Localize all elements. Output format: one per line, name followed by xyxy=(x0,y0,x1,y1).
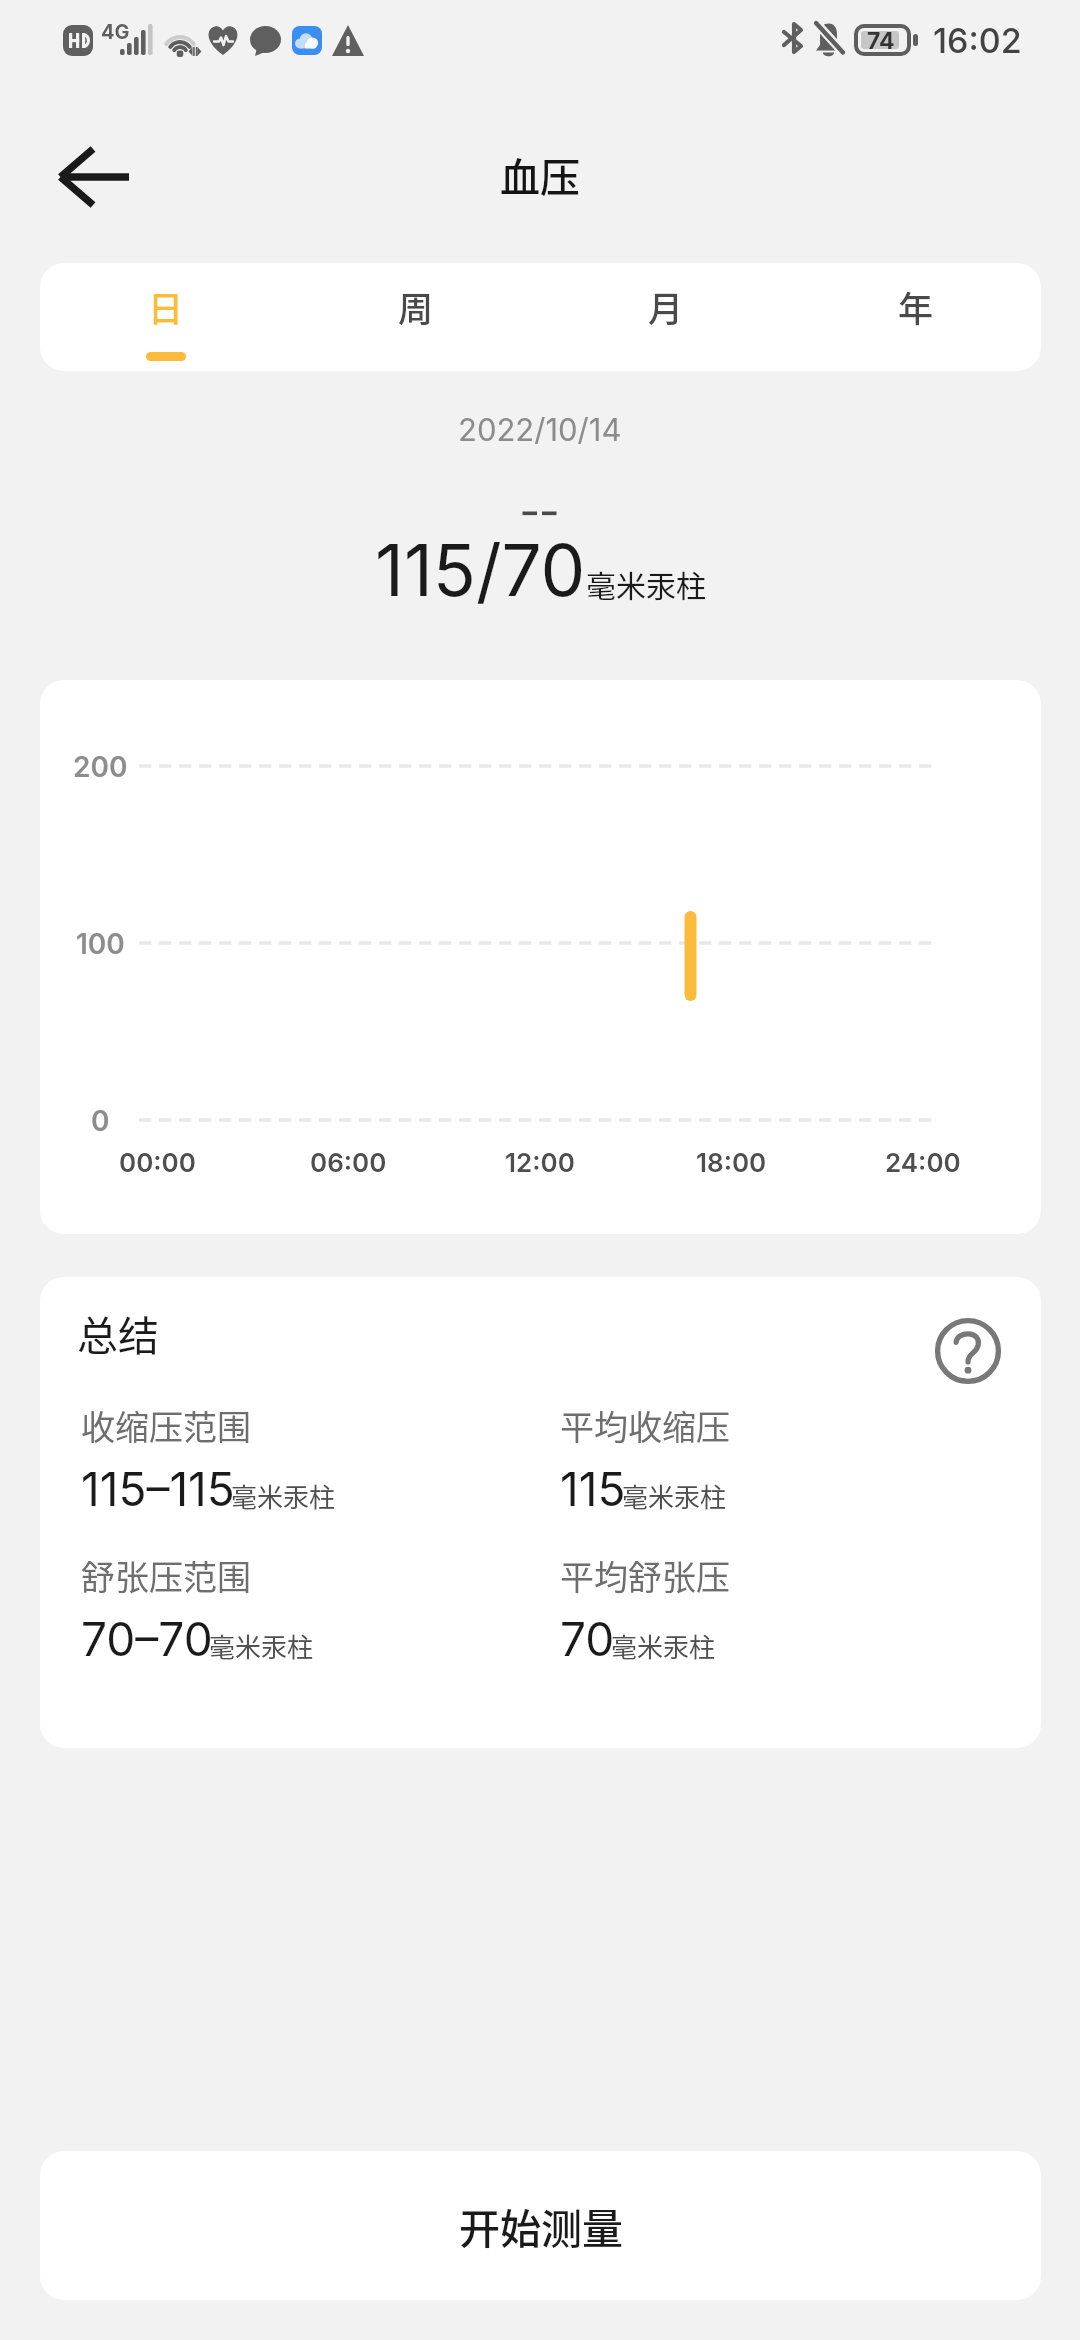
staticText: 平均舒张压 xyxy=(560,1551,730,1600)
staticText: 0 xyxy=(91,1104,110,1138)
staticText: 年 xyxy=(898,281,934,332)
staticText: 100 xyxy=(76,927,125,961)
staticText: 06:00 xyxy=(310,1147,387,1178)
staticText: 毫米汞柱 xyxy=(622,1477,727,1515)
button[interactable]: Help xyxy=(916,1299,1020,1403)
staticText: 12:00 xyxy=(505,1147,575,1178)
staticText: 70 xyxy=(560,1611,615,1667)
staticText: 平均收缩压 xyxy=(560,1401,730,1450)
staticText: 毫米汞柱 xyxy=(586,562,706,605)
staticText: 74 xyxy=(867,27,895,55)
staticText: 月 xyxy=(648,281,684,332)
staticText: 收缩压范围 xyxy=(81,1401,251,1450)
staticText: 00:00 xyxy=(119,1147,196,1178)
staticText: 70–70 xyxy=(81,1611,213,1667)
staticText: 毫米汞柱 xyxy=(209,1627,314,1665)
button[interactable]: 日 xyxy=(40,263,291,371)
staticText: 毫米汞柱 xyxy=(611,1627,716,1665)
button[interactable]: 年 xyxy=(791,263,1041,371)
staticText: 2022/10/14 xyxy=(458,411,622,449)
button[interactable]: 月 xyxy=(541,263,791,371)
staticText: 16:02 xyxy=(933,20,1022,61)
staticText: 18:00 xyxy=(696,1147,767,1178)
staticText: 115 xyxy=(560,1461,626,1517)
staticText: 血压 xyxy=(500,146,580,204)
staticText: 4G xyxy=(101,20,130,44)
staticText: 周 xyxy=(398,281,434,332)
staticText: 舒张压范围 xyxy=(81,1551,251,1600)
staticText: 200 xyxy=(73,750,128,784)
staticText: 115–115 xyxy=(81,1461,235,1517)
button[interactable]: 开始测量 xyxy=(40,2151,1041,2300)
button[interactable]: 周 xyxy=(291,263,541,371)
staticText: 115/70 xyxy=(375,527,586,613)
staticText: 开始测量 xyxy=(459,2196,623,2255)
staticText: 24:00 xyxy=(885,1147,961,1178)
staticText: 毫米汞柱 xyxy=(231,1477,336,1515)
button[interactable]: Back xyxy=(34,119,154,235)
staticText: 总结 xyxy=(77,1303,159,1362)
staticText: 日 xyxy=(148,281,184,332)
